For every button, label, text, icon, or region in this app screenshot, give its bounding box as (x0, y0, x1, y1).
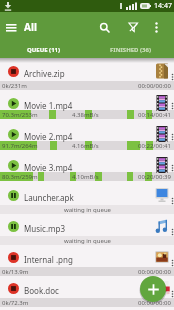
button[interactable]: Movie 2.mp4 (0, 121, 174, 152)
staticText: 4.16mB/s (72, 142, 99, 150)
button[interactable] (140, 276, 166, 302)
button[interactable]: Music.mp3 (0, 214, 174, 245)
button[interactable]: Internal .png (0, 245, 174, 276)
button[interactable] (126, 20, 141, 35)
staticText: 80.3m/259m (2, 173, 38, 181)
staticText: 4.38mB/s (72, 111, 99, 119)
staticText: 00:20/00:39 (138, 173, 171, 181)
staticText: 0k/231m (2, 82, 27, 90)
staticText: 00:22/00:41 (138, 142, 171, 150)
staticText: Music.mp3 (24, 223, 66, 234)
button[interactable]: Movie 1.mp4 (0, 90, 174, 121)
button[interactable] (97, 20, 112, 35)
staticText: Movie 2.mp4 (24, 131, 73, 142)
staticText: Launcher.apk (24, 192, 74, 203)
button[interactable]: Movie 3.mp4 (0, 152, 174, 183)
staticText: Archive.zip (24, 68, 65, 79)
staticText: 00:00/00:00 (138, 268, 171, 276)
staticText: QUEUE (11) (27, 46, 61, 54)
button[interactable]: Book.doc (0, 276, 174, 307)
staticText: All (24, 20, 37, 34)
button[interactable]: QUEUE (11) (0, 42, 87, 58)
staticText: waiting in queue (64, 206, 111, 214)
staticText: 14:47 (154, 1, 172, 11)
staticText: Movie 3.mp4 (24, 162, 73, 173)
button[interactable]: Archive.zip (0, 59, 174, 90)
staticText: FINISHED (36) (110, 46, 151, 54)
staticText: 70.3m/253m (2, 111, 38, 119)
staticText: 00:00/00:00 (138, 82, 171, 90)
button[interactable]: Launcher.apk (0, 183, 174, 214)
staticText: Internal .png (24, 254, 73, 265)
staticText: Book.doc (24, 285, 59, 296)
staticText: 4.10mB/s (72, 173, 99, 181)
staticText: 00:14/00:41 (138, 111, 171, 119)
staticText: 0k/13.9m (2, 268, 29, 276)
staticText: 91.7m/264m (2, 142, 38, 150)
staticText: 00:00/00:00 (138, 299, 171, 307)
staticText: Movie 1.mp4 (24, 100, 73, 111)
button[interactable]: FINISHED (36) (87, 42, 174, 58)
staticText: 0k/72.3m (2, 299, 29, 307)
staticText: waiting in queue (64, 237, 111, 245)
button[interactable] (149, 20, 164, 35)
button[interactable] (2, 22, 21, 34)
